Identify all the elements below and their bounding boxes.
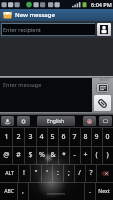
staticText: @ <box>3 150 10 160</box>
staticText: 0 <box>105 132 110 142</box>
button[interactable]: ? <box>85 164 96 182</box>
staticText: / <box>78 168 81 178</box>
button[interactable]: + <box>80 146 91 164</box>
button[interactable]: & <box>47 146 58 164</box>
staticText: ; <box>68 168 70 178</box>
button[interactable]: Enter recipient <box>1 23 95 36</box>
button[interactable]: % <box>36 146 47 164</box>
button[interactable]: - <box>69 146 80 164</box>
staticText: 2 <box>16 132 21 142</box>
staticText: ! <box>23 168 25 178</box>
staticText: & <box>50 150 56 160</box>
button[interactable]: / <box>74 164 85 182</box>
button[interactable]: ABC <box>0 182 17 200</box>
button[interactable]: 1 <box>0 127 12 146</box>
button[interactable]: : <box>52 164 63 182</box>
button[interactable]: 5 <box>47 127 58 146</box>
button[interactable]: ( <box>91 146 102 164</box>
staticText: $ <box>28 150 33 160</box>
staticText: English <box>47 118 65 125</box>
staticText: + <box>83 150 88 160</box>
button[interactable]: 8 <box>80 127 91 146</box>
staticText: ? <box>89 168 93 178</box>
button[interactable]: Settings <box>17 116 30 126</box>
button[interactable]: . <box>84 182 95 200</box>
staticText: ABC <box>4 188 14 195</box>
button[interactable]: Enter message <box>0 76 92 112</box>
button[interactable]: Backspace <box>96 164 113 182</box>
staticText: 6 <box>61 132 66 142</box>
button[interactable]: 7 <box>69 127 80 146</box>
button[interactable]: ; <box>63 164 74 182</box>
staticText: ' <box>46 168 48 178</box>
button[interactable]: ALT <box>0 164 18 182</box>
button[interactable]: ' <box>41 164 52 182</box>
button[interactable]: Attach <box>94 95 111 111</box>
staticText: 5 <box>50 132 55 142</box>
staticText: * <box>62 150 66 160</box>
staticText: 3 <box>28 132 33 142</box>
button[interactable]: @ <box>0 146 12 164</box>
staticText: Enter message <box>3 81 42 88</box>
staticText: 160/1 <box>99 77 110 82</box>
button[interactable]: English <box>37 116 75 126</box>
staticText: Enter recipient <box>3 26 41 33</box>
staticText: ( <box>95 150 98 160</box>
staticText: % <box>39 150 45 160</box>
staticText: ) <box>106 150 109 160</box>
staticText: - <box>73 150 76 160</box>
button[interactable]: , <box>17 182 28 200</box>
staticText: " <box>34 168 38 178</box>
button[interactable]: " <box>30 164 41 182</box>
button[interactable]: New message <box>0 9 113 21</box>
staticText: 4 <box>39 132 44 142</box>
button[interactable]: Space <box>28 182 84 200</box>
staticText: New message <box>15 11 55 19</box>
button[interactable]: 9 <box>91 127 102 146</box>
button[interactable]: Hide keyboard <box>99 116 112 126</box>
button[interactable]: 3 <box>24 127 36 146</box>
button[interactable]: Voice input <box>1 116 14 126</box>
staticText: ALT <box>5 170 14 177</box>
button[interactable]: 6 <box>58 127 69 146</box>
staticText: 9 <box>94 132 99 142</box>
button[interactable]: Next <box>95 182 113 200</box>
staticText: 6:04 PM <box>91 1 112 8</box>
button[interactable]: ! <box>18 164 30 182</box>
button[interactable]: # <box>12 146 24 164</box>
staticText: . <box>89 186 91 196</box>
staticText: : <box>57 168 59 178</box>
staticText: # <box>16 150 21 160</box>
button[interactable]: Message type <box>96 83 109 93</box>
button[interactable]: $ <box>24 146 36 164</box>
staticText: 8 <box>83 132 88 142</box>
staticText: 7 <box>72 132 77 142</box>
button[interactable]: * <box>58 146 69 164</box>
button[interactable]: Emoji <box>83 116 96 126</box>
staticText: 1 <box>4 132 9 142</box>
staticText: Next <box>98 188 110 195</box>
button[interactable]: Choose contact <box>97 23 111 36</box>
button[interactable]: 0 <box>102 127 113 146</box>
button[interactable]: 4 <box>36 127 47 146</box>
button[interactable]: ) <box>102 146 113 164</box>
button[interactable]: 2 <box>12 127 24 146</box>
staticText: , <box>22 186 24 196</box>
